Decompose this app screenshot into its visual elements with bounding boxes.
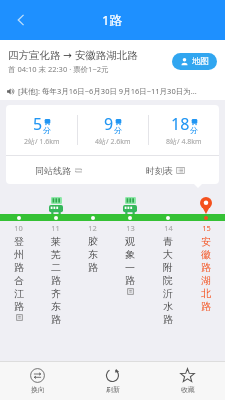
- button[interactable]: 换向: [0, 362, 75, 400]
- staticText: 江: [14, 287, 24, 300]
- staticText: 湖: [201, 274, 211, 287]
- staticText: 大: [163, 248, 173, 261]
- staticText: 胶: [88, 235, 98, 248]
- other: Current location: [200, 197, 212, 214]
- staticText: 收藏: [181, 385, 195, 394]
- button[interactable]: 时刻表: [112, 156, 219, 184]
- button[interactable]: 5: [6, 105, 77, 155]
- staticText: 14: [164, 223, 173, 233]
- button[interactable]: 同站线路: [6, 156, 112, 184]
- staticText: 合: [14, 274, 24, 287]
- staticText: 9: [104, 113, 114, 135]
- staticText: 分: [190, 125, 198, 135]
- staticText: 路: [14, 261, 24, 274]
- button[interactable]: [其他]: 每年3月16日~6月30日 9月16日~11月30日为...: [0, 82, 225, 100]
- staticText: 四方宣化路 → 安徽路湖北路: [8, 48, 138, 62]
- button[interactable]: 刷新: [75, 362, 150, 400]
- staticText: 路: [88, 261, 98, 274]
- staticText: 二: [51, 261, 61, 274]
- button[interactable]: 15: [187, 223, 225, 313]
- staticText: 附: [163, 261, 173, 274]
- button[interactable]: 10: [0, 223, 37, 321]
- staticText: 12: [88, 223, 97, 233]
- staticText: 州: [14, 248, 24, 261]
- button[interactable]: 收藏: [150, 362, 225, 400]
- staticText: 路: [51, 274, 61, 287]
- button[interactable]: Back: [4, 3, 38, 37]
- staticText: 莱: [51, 235, 61, 248]
- button[interactable]: 9: [78, 105, 148, 155]
- staticText: 东: [51, 300, 61, 313]
- staticText: 北: [201, 287, 211, 300]
- staticText: 沂: [163, 287, 173, 300]
- staticText: [其他]: 每年3月16日~6月30日 9月16日~11月30日为...: [18, 86, 197, 96]
- staticText: 8站/ 4.8km: [166, 137, 202, 147]
- staticText: 18: [171, 113, 190, 135]
- staticText: 路: [14, 300, 24, 313]
- staticText: 东: [88, 248, 98, 261]
- staticText: 一: [125, 261, 135, 274]
- staticText: 路: [51, 313, 61, 326]
- staticText: 分: [114, 125, 122, 135]
- staticText: 路: [125, 274, 135, 287]
- staticText: 观: [125, 235, 135, 248]
- staticText: 5: [33, 113, 43, 135]
- staticText: 10: [14, 223, 23, 233]
- button[interactable]: 12: [74, 223, 111, 274]
- staticText: 路: [163, 313, 173, 326]
- staticText: 首 04:10 末 22:30 · 票价1~2元: [8, 64, 109, 74]
- staticText: 同站线路: [35, 165, 71, 176]
- staticText: 青: [163, 235, 173, 248]
- staticText: 水: [163, 300, 173, 313]
- staticText: 换向: [31, 385, 45, 394]
- staticText: 登: [14, 235, 24, 248]
- button[interactable]: 11: [37, 223, 74, 326]
- staticText: 2站/ 1.6km: [24, 137, 60, 147]
- staticText: 15: [202, 223, 211, 233]
- staticText: 徽: [201, 248, 211, 261]
- staticText: 路: [201, 261, 211, 274]
- staticText: 象: [125, 248, 135, 261]
- staticText: 1路: [102, 11, 123, 29]
- staticText: 院: [163, 274, 173, 287]
- button[interactable]: 13: [111, 223, 149, 295]
- staticText: 地图: [192, 56, 209, 67]
- staticText: 芜: [51, 248, 61, 261]
- staticText: 安: [201, 235, 211, 248]
- button[interactable]: 18: [149, 105, 219, 155]
- staticText: 时刻表: [146, 165, 173, 176]
- staticText: 刷新: [106, 385, 120, 394]
- staticText: 11: [51, 223, 60, 233]
- staticText: 路: [201, 300, 211, 313]
- button[interactable]: 地图: [172, 53, 217, 70]
- staticText: 13: [126, 223, 135, 233]
- staticText: 齐: [51, 287, 61, 300]
- staticText: 4站/ 2.6km: [95, 137, 131, 147]
- staticText: 分: [43, 125, 51, 135]
- button[interactable]: 14: [149, 223, 187, 326]
